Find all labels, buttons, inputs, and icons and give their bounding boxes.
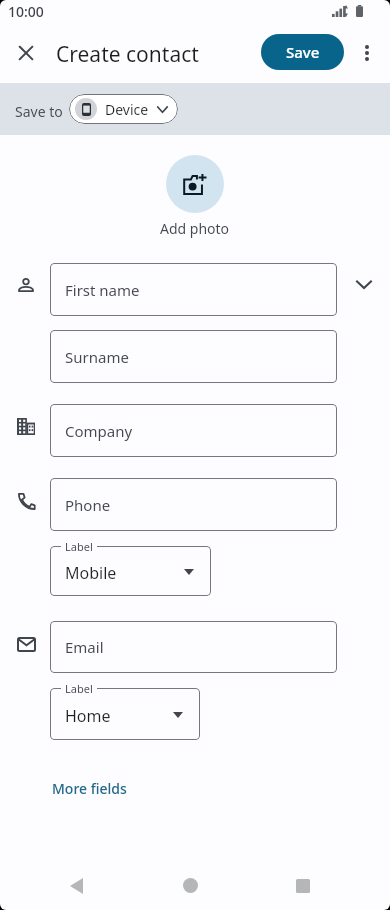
button[interactable]: Home (50, 688, 200, 740)
button[interactable]: Expand name fields (348, 268, 380, 300)
button[interactable]: More options (344, 30, 389, 75)
button[interactable]: Add photo (166, 155, 224, 213)
button[interactable]: Company (50, 404, 337, 457)
button[interactable]: Device (69, 94, 178, 124)
button[interactable]: Surname (50, 330, 337, 383)
staticText: 10:00 (8, 2, 44, 21)
button[interactable]: Recent apps (287, 870, 319, 902)
button[interactable]: Home (174, 869, 206, 901)
staticText: Save to (15, 102, 63, 121)
staticText: Home (65, 705, 111, 727)
button[interactable]: Back (60, 869, 93, 902)
staticText: Device (105, 100, 149, 119)
staticText: Label (65, 539, 93, 554)
staticText: Mobile (65, 562, 117, 584)
staticText: Company (65, 421, 133, 441)
staticText: Label (65, 681, 93, 696)
button[interactable]: Save (261, 34, 344, 70)
button[interactable]: More fields (42, 773, 137, 804)
staticText: Surname (65, 347, 129, 367)
button[interactable]: Close (3, 30, 48, 75)
staticText: Add photo (160, 219, 230, 238)
staticText: More fields (52, 779, 127, 798)
staticText: Email (65, 637, 104, 657)
staticText: First name (65, 280, 140, 300)
button[interactable]: Mobile (50, 546, 211, 596)
button[interactable]: First name (50, 263, 337, 316)
button[interactable]: Phone (50, 478, 337, 531)
staticText: Phone (65, 495, 111, 515)
staticText: Save (286, 42, 320, 62)
staticText: Create contact (56, 40, 199, 69)
button[interactable]: Email (50, 621, 337, 673)
